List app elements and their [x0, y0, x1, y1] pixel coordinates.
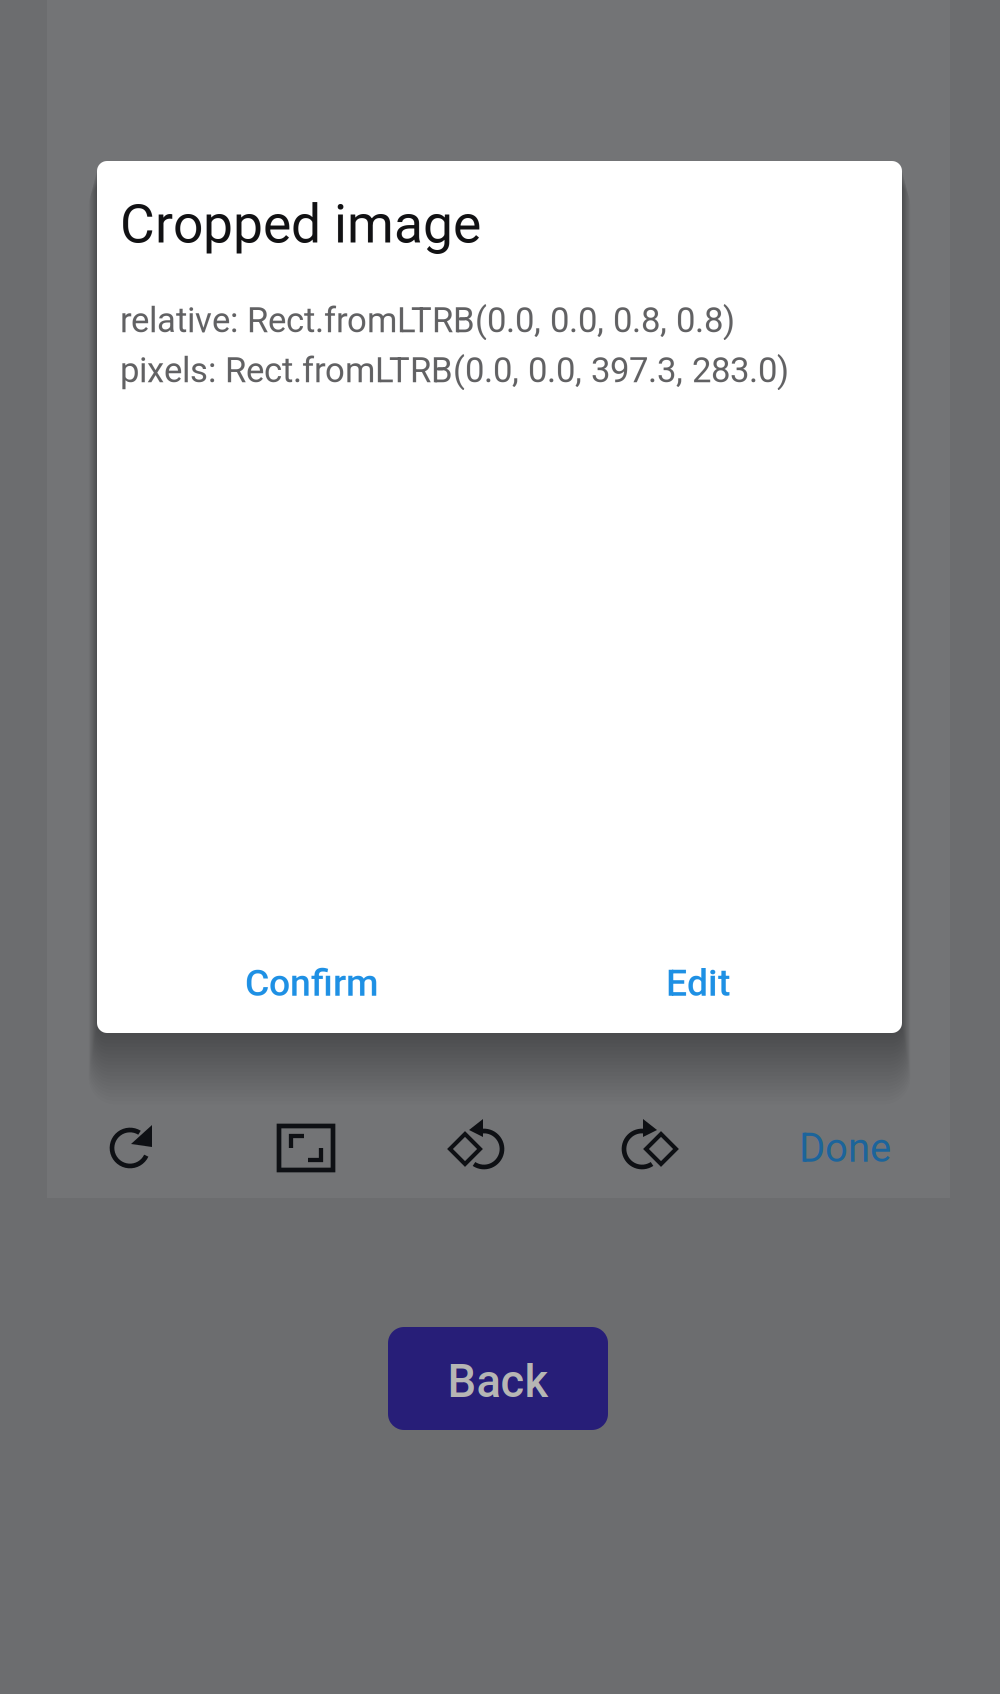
- button[interactable]: Reset: [92, 1108, 172, 1188]
- button[interactable]: Rotate left: [436, 1108, 516, 1188]
- button[interactable]: Edit: [638, 945, 758, 1021]
- button[interactable]: Rotate right: [610, 1108, 690, 1188]
- button[interactable]: Done: [765, 1102, 925, 1194]
- button[interactable]: Confirm: [222, 945, 402, 1021]
- staticText: relative: Rect.fromLTRB(0.0, 0.0, 0.8, 0…: [120, 300, 735, 341]
- staticText: Confirm: [245, 961, 379, 1005]
- staticText: Done: [799, 1125, 891, 1171]
- staticText: pixels: Rect.fromLTRB(0.0, 0.0, 397.3, 2…: [120, 350, 789, 391]
- staticText: Edit: [666, 961, 730, 1005]
- button[interactable]: Back: [388, 1327, 608, 1430]
- staticText: Back: [447, 1355, 548, 1408]
- staticText: Cropped image: [120, 193, 481, 255]
- button[interactable]: Aspect ratio: [266, 1108, 346, 1188]
